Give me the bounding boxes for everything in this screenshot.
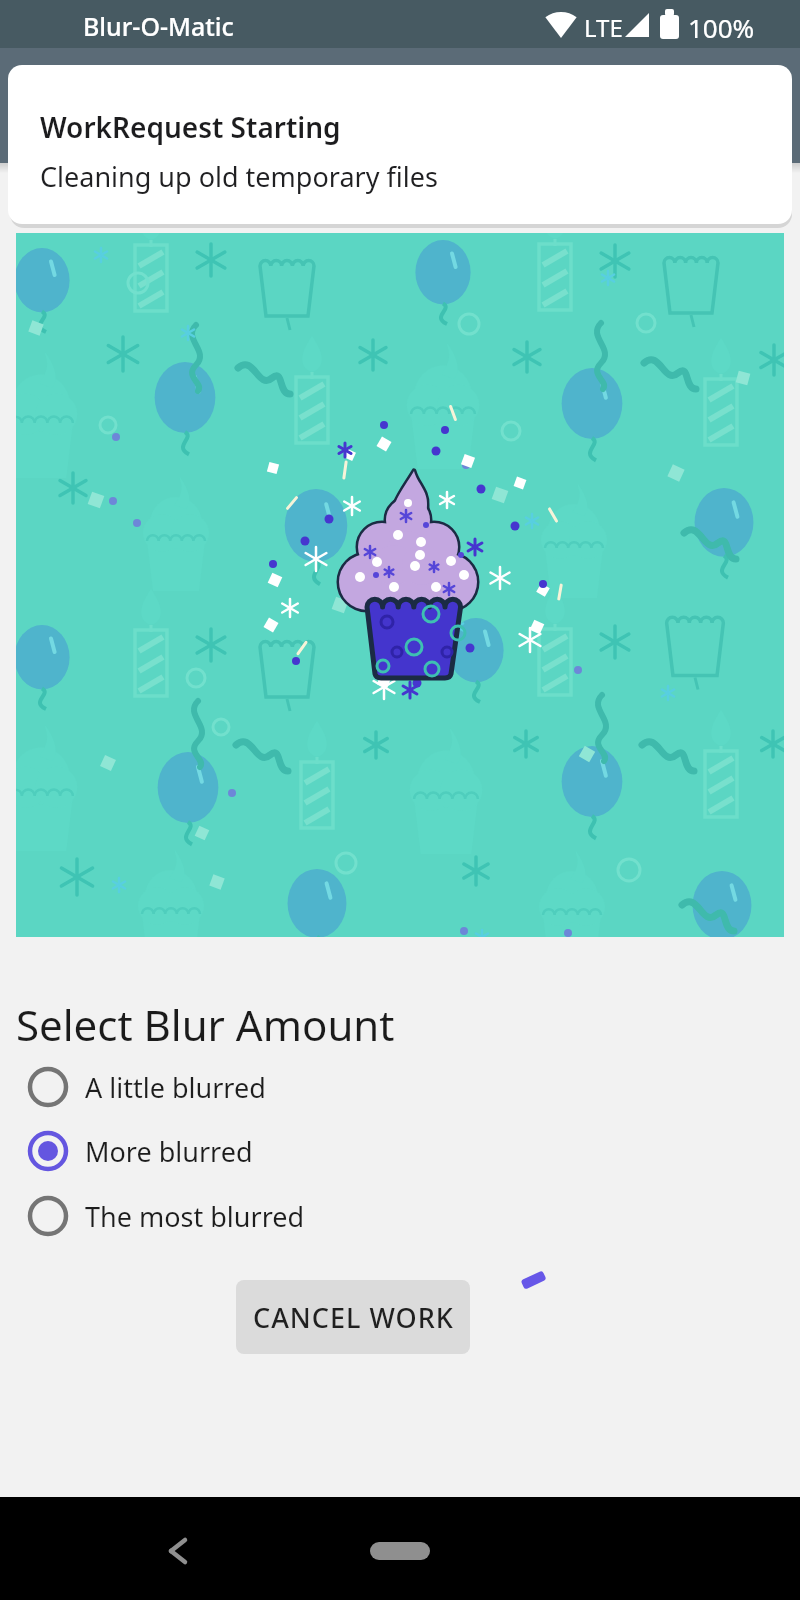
button[interactable] [370, 1542, 430, 1560]
staticText: Cleaning up old temporary files [40, 158, 438, 195]
staticText: More blurred [85, 1133, 253, 1170]
button[interactable]: A little blurred [16, 1061, 356, 1113]
staticText: A little blurred [85, 1069, 266, 1106]
staticText: CANCEL WORK [253, 1299, 454, 1336]
button[interactable] [160, 1527, 204, 1571]
staticText: The most blurred [85, 1198, 305, 1235]
button[interactable]: More blurred [16, 1125, 356, 1177]
button[interactable]: The most blurred [16, 1190, 356, 1242]
staticText: Blur-O-Matic [83, 9, 234, 43]
button[interactable]: CANCEL WORK [236, 1280, 470, 1354]
staticText: 100% [688, 10, 755, 45]
staticText: LTE [584, 11, 623, 44]
staticText: Select Blur Amount [16, 996, 395, 1053]
staticText: WorkRequest Starting [40, 108, 341, 146]
